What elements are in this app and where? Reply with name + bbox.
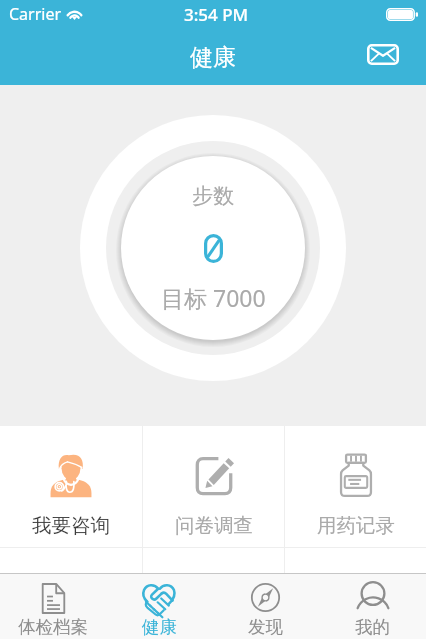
- button[interactable]: 健康: [106, 574, 212, 639]
- staticText: 健康: [142, 616, 177, 638]
- staticText: 健康: [190, 43, 236, 72]
- button[interactable]: 我的: [319, 574, 426, 639]
- button[interactable]: 问卷调查: [143, 426, 284, 547]
- button[interactable]: Messages: [360, 31, 406, 77]
- button[interactable]: 发现: [212, 574, 319, 639]
- staticText: Carrier: [9, 3, 62, 25]
- button[interactable]: 我要咨询: [0, 426, 142, 547]
- staticText: 体检档案: [18, 616, 88, 638]
- staticText: 目标 7000: [161, 282, 266, 313]
- staticText: 3:54 PM: [184, 3, 249, 26]
- staticText: 用药记录: [317, 513, 395, 538]
- staticText: 我要咨询: [32, 513, 110, 538]
- staticText: 发现: [248, 616, 283, 638]
- staticText: 我的: [355, 616, 390, 638]
- button[interactable]: 体检档案: [0, 574, 106, 639]
- staticText: 步数: [192, 183, 234, 209]
- staticText: 问卷调查: [175, 513, 253, 538]
- button[interactable]: 用药记录: [285, 426, 426, 547]
